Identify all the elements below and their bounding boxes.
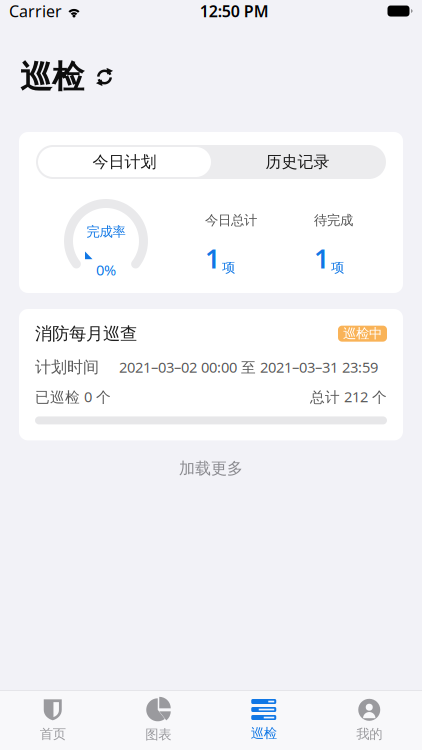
button[interactable]: 首页: [0, 691, 105, 750]
staticText: 消防每月巡查: [35, 323, 137, 344]
staticText: 巡检中: [343, 325, 382, 342]
button[interactable]: 图表: [105, 691, 211, 750]
staticText: 项: [222, 259, 235, 276]
staticText: 历史记录: [265, 152, 329, 172]
staticText: 1: [205, 240, 220, 276]
button[interactable]: 消防每月巡查: [19, 309, 403, 440]
staticText: 首页: [40, 726, 66, 742]
button[interactable]: 我的: [316, 691, 422, 750]
button[interactable]: Refresh: [95, 67, 114, 86]
staticText: 巡检: [251, 725, 277, 741]
staticText: 巡检: [20, 57, 84, 97]
staticText: 加载更多: [179, 459, 243, 478]
button[interactable]: 历史记录: [211, 147, 384, 177]
staticText: 今日总计: [205, 212, 257, 228]
staticText: Carrier: [9, 0, 62, 22]
button[interactable]: 加载更多: [0, 457, 422, 479]
staticText: 已巡检 0 个: [35, 387, 111, 406]
staticText: 计划时间: [35, 357, 99, 377]
staticText: 项: [331, 259, 344, 276]
button[interactable]: 今日计划: [38, 147, 211, 177]
staticText: 0%: [96, 260, 116, 279]
staticText: 1: [314, 240, 329, 276]
button[interactable]: 巡检: [211, 691, 316, 750]
staticText: 待完成: [314, 212, 353, 228]
staticText: 今日计划: [92, 152, 156, 172]
staticText: 总计 212 个: [310, 387, 387, 406]
staticText: 2021–03–02 00:00 至 2021–03–31 23:59: [119, 357, 378, 377]
staticText: 图表: [145, 726, 171, 743]
staticText: 12:50 PM: [200, 0, 269, 22]
staticText: 完成率: [86, 224, 125, 240]
staticText: 我的: [356, 726, 382, 742]
